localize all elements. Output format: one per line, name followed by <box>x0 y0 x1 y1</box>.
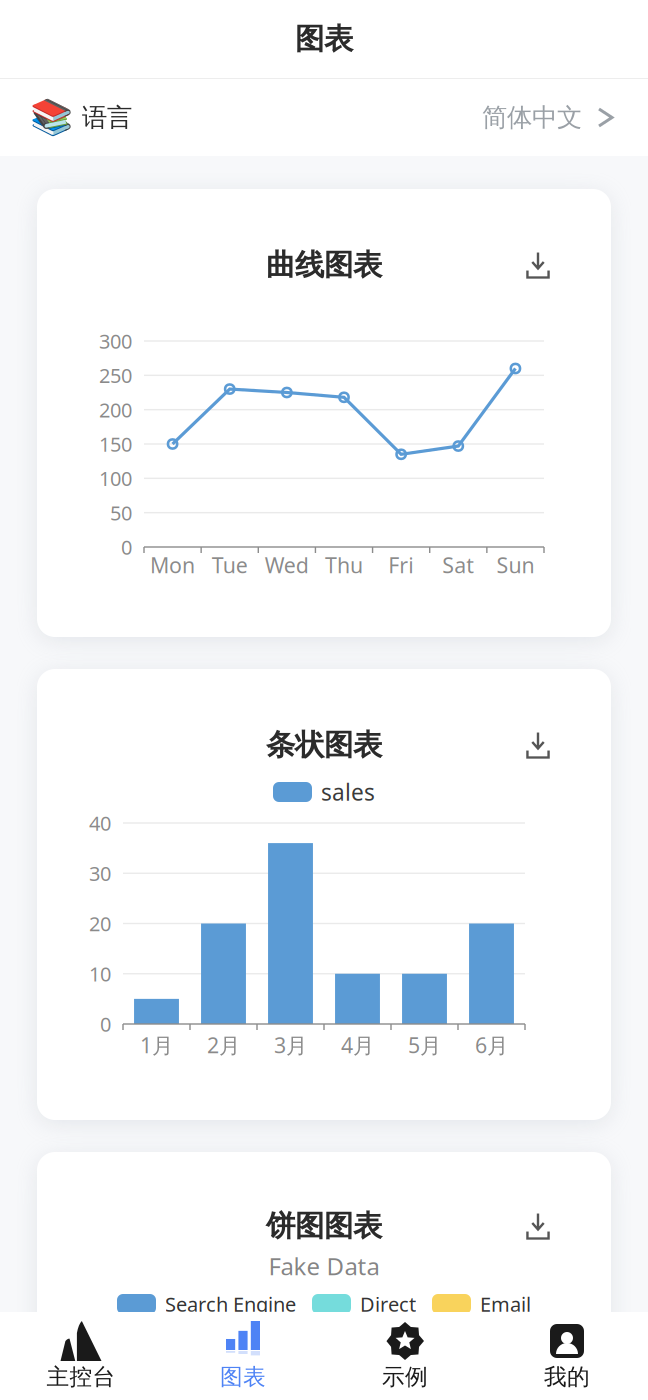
staticText: Wed <box>265 551 309 579</box>
staticText: 曲线图表 <box>266 247 382 283</box>
staticText: Tue <box>212 551 248 579</box>
staticText: 20 <box>89 910 111 937</box>
staticText: 主控台 <box>46 1363 115 1391</box>
staticText: Fake Data <box>268 1250 379 1282</box>
staticText: 条状图表 <box>266 727 382 763</box>
staticText: 150 <box>99 431 132 457</box>
staticText: Search Engine <box>165 1291 296 1317</box>
staticText: 图表 <box>295 21 353 57</box>
button[interactable]: 我的 <box>486 1320 648 1392</box>
button[interactable]: 下载 <box>513 1203 563 1248</box>
button[interactable]: 示例 <box>324 1320 486 1392</box>
staticText: 4月 <box>341 1031 374 1059</box>
staticText: 我的 <box>544 1363 590 1391</box>
staticText: 40 <box>89 810 111 836</box>
button[interactable]: 📚 <box>0 79 648 156</box>
staticText: 0 <box>100 1011 111 1037</box>
staticText: Email <box>480 1291 531 1317</box>
staticText: 示例 <box>382 1363 428 1391</box>
staticText: 图表 <box>220 1363 266 1391</box>
staticText: Sat <box>442 551 474 579</box>
staticText: 30 <box>89 860 111 887</box>
staticText: Mon <box>150 551 195 579</box>
staticText: 饼图图表 <box>266 1208 382 1244</box>
button[interactable]: 下载 <box>513 242 563 287</box>
button[interactable]: 主控台 <box>0 1320 162 1392</box>
staticText: 3月 <box>274 1031 307 1059</box>
staticText: 5月 <box>408 1031 441 1059</box>
staticText: Direct <box>360 1291 416 1317</box>
staticText: 0 <box>121 534 132 560</box>
staticText: sales <box>321 777 375 807</box>
staticText: 250 <box>99 362 132 389</box>
staticText: 📚 <box>30 98 73 137</box>
staticText: 语言 <box>82 102 132 133</box>
button[interactable]: 图表 <box>162 1320 324 1392</box>
staticText: Sun <box>496 551 534 579</box>
staticText: 300 <box>99 328 132 354</box>
staticText: 1月 <box>140 1031 173 1059</box>
staticText: Thu <box>325 551 363 579</box>
staticText: 50 <box>110 499 132 526</box>
staticText: 200 <box>99 396 132 423</box>
staticText: 简体中文 <box>482 102 582 133</box>
staticText: 2月 <box>207 1031 240 1059</box>
staticText: Fri <box>388 551 414 579</box>
staticText: 100 <box>99 465 132 492</box>
button[interactable]: 下载 <box>513 722 563 767</box>
staticText: 6月 <box>475 1031 508 1059</box>
staticText: 10 <box>89 960 111 987</box>
